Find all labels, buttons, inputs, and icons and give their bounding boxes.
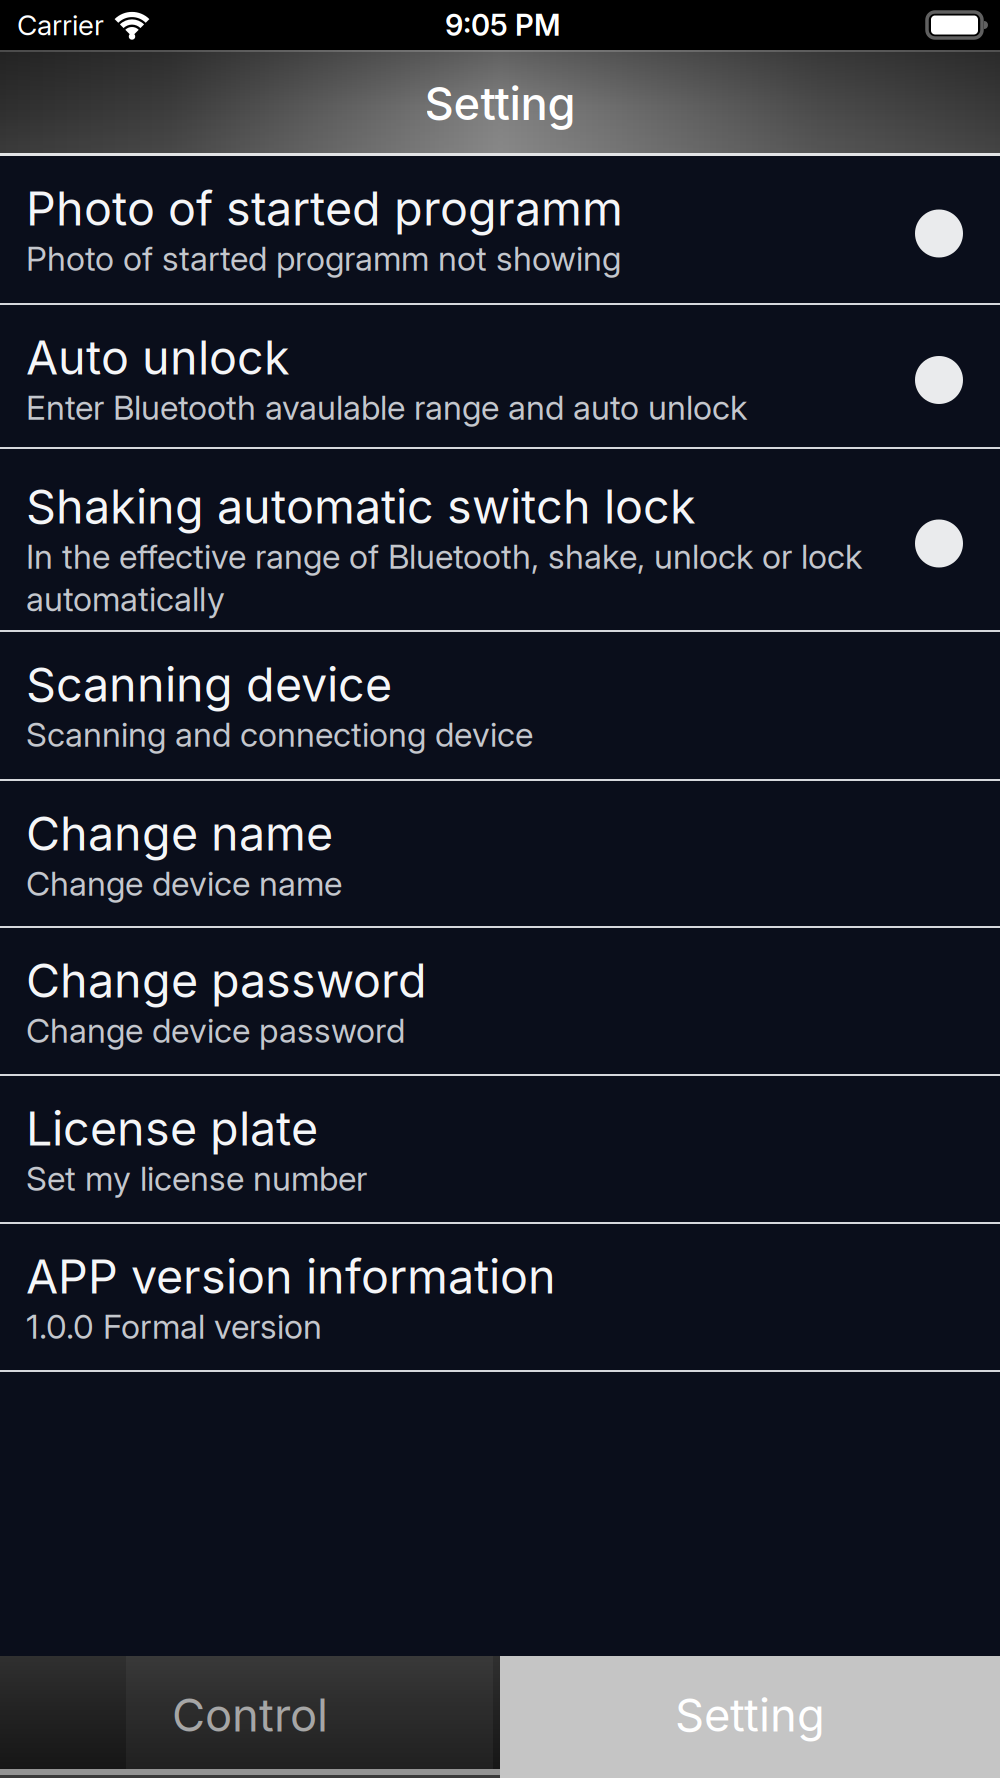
staticText: Auto unlock [26,330,290,385]
staticText: In the effective range of Bluetooth, sha… [26,537,862,576]
button[interactable]: License plate [0,1076,1000,1222]
staticText: 9:05 PM [445,8,561,42]
staticText: Enter Bluetooth avaulable range and auto… [26,388,747,427]
staticText: 1.0.0 Formal version [26,1307,322,1346]
button[interactable]: Auto unlock [0,305,1000,447]
staticText: Shaking automatic switch lock [26,479,696,534]
staticText: Change password [26,953,427,1008]
staticText: Scanning and connectiong device [26,715,533,754]
staticText: Change device name [26,864,342,903]
staticText: Setting [675,1688,825,1742]
button[interactable]: Change password [0,928,1000,1074]
staticText: Carrier [17,8,104,41]
staticText: Set my license number [26,1159,367,1198]
button[interactable]: Setting [500,1656,1000,1778]
button[interactable]: Control [0,1656,500,1778]
staticText: APP version information [26,1249,556,1304]
staticText: Scanning device [26,657,392,712]
staticText: License plate [26,1101,318,1156]
staticText: Photo of started programm not showing [26,239,621,278]
button[interactable]: Scanning device [0,632,1000,779]
button[interactable]: Shaking automatic switch lock [0,449,1000,630]
staticText: Change device password [26,1011,405,1050]
staticText: Setting [424,77,575,130]
button[interactable]: Change name [0,781,1000,926]
staticText: Photo of started programm [26,181,623,236]
button[interactable]: Photo of started programm [0,156,1000,303]
staticText: Control [172,1688,328,1742]
staticText: Change name [26,806,333,861]
staticText: automatically [26,579,225,619]
button[interactable]: APP version information [0,1224,1000,1370]
